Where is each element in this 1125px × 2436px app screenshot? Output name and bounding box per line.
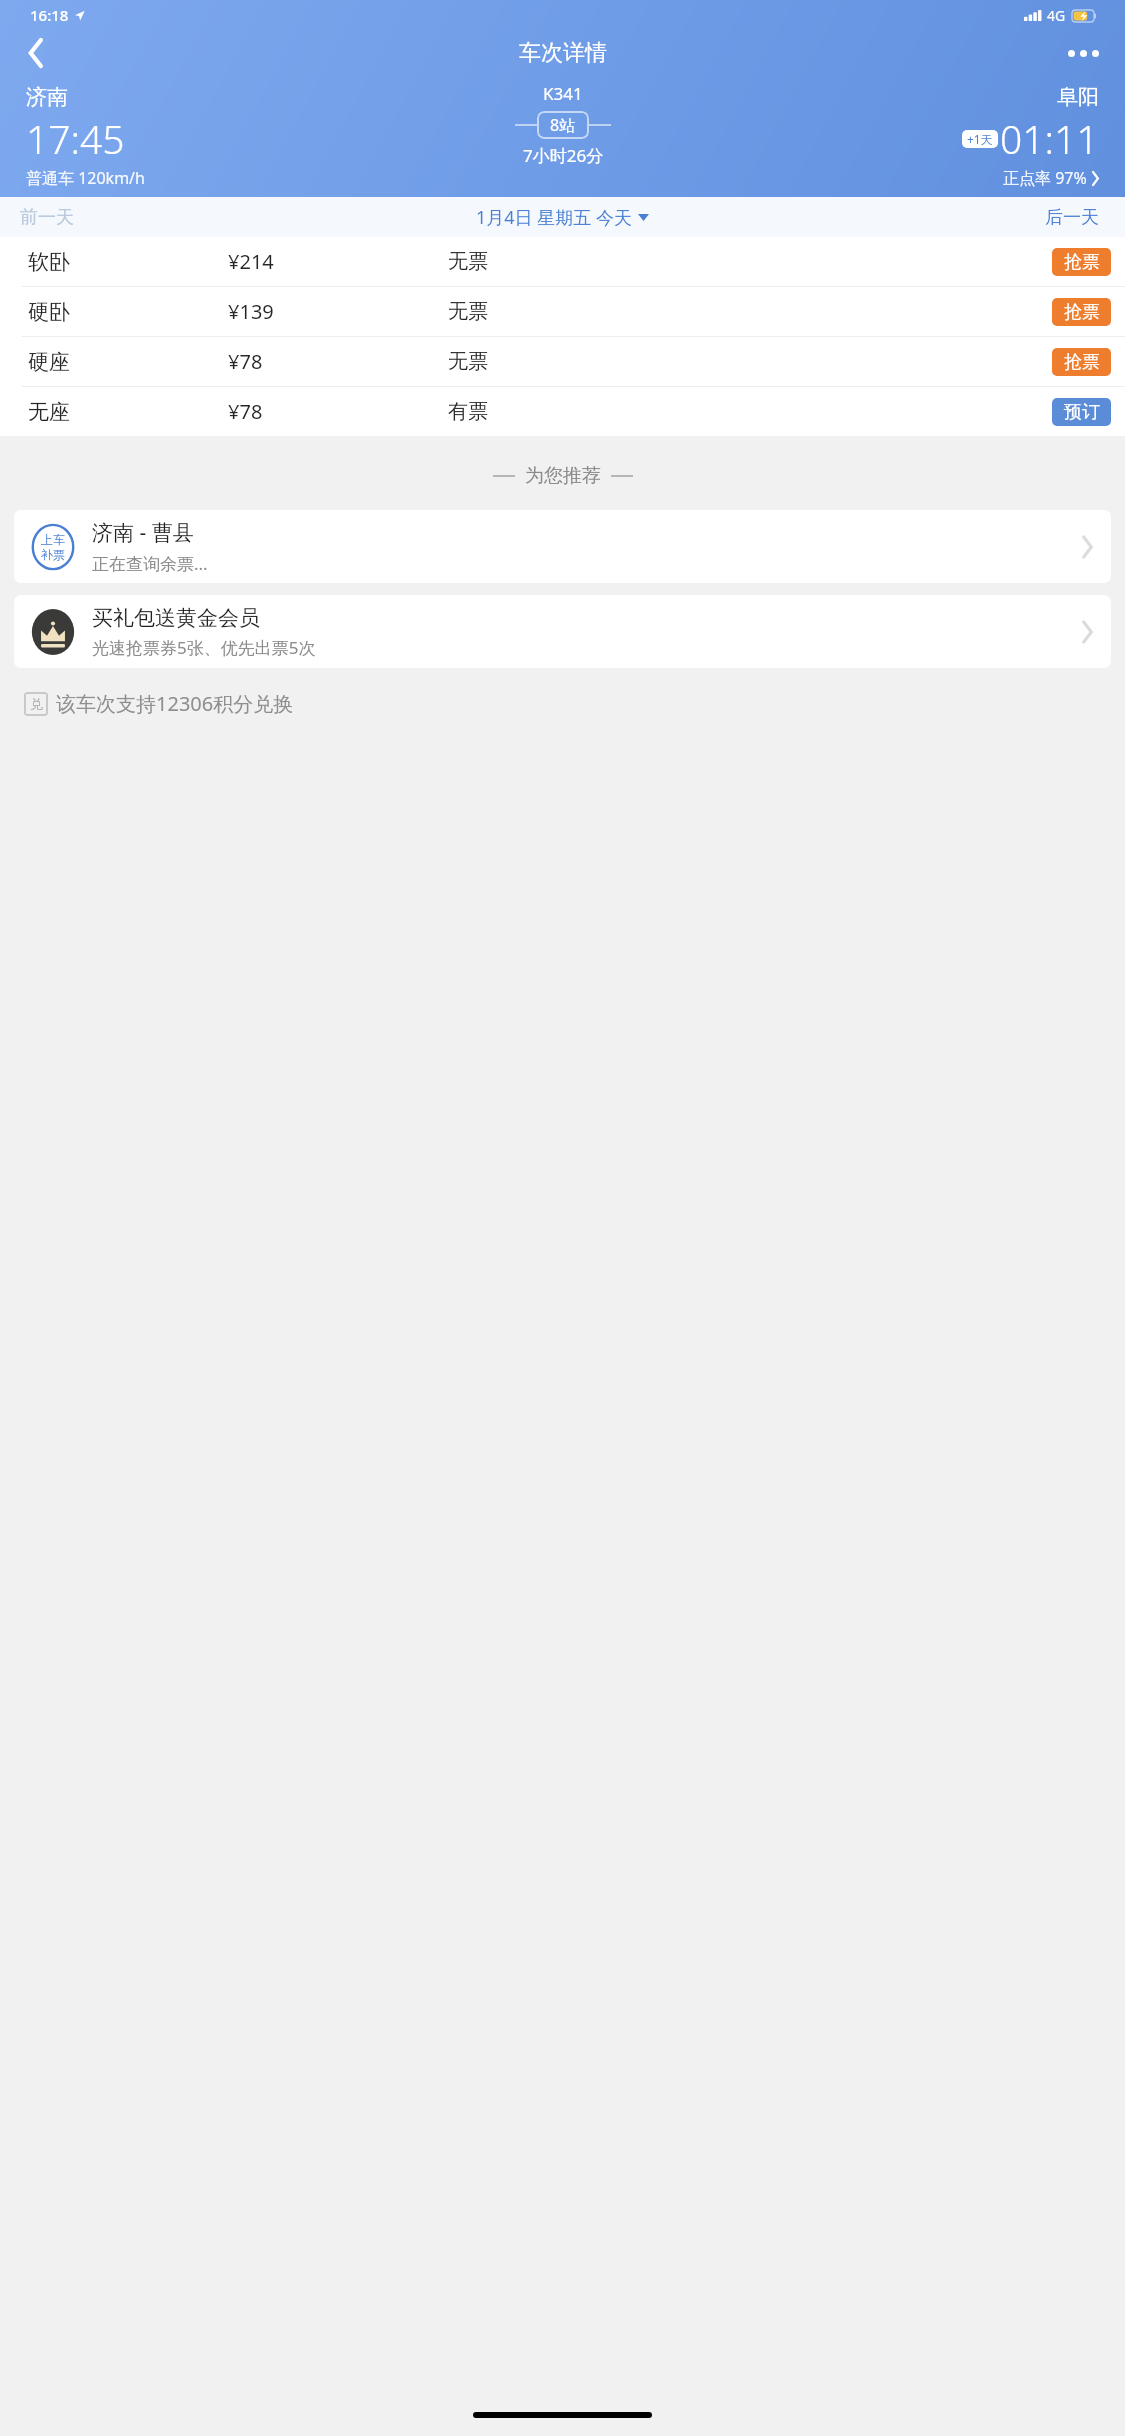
staticText: 硬卧 xyxy=(28,299,70,325)
button[interactable]: 后一天 xyxy=(1045,197,1099,237)
button[interactable]: 买礼包送黄金会员 xyxy=(14,595,1111,668)
staticText: 17:45 xyxy=(26,112,125,165)
button[interactable]: 抢票 xyxy=(1052,298,1111,326)
staticText: 4G xyxy=(1047,6,1066,25)
staticText: 无票 xyxy=(448,249,488,274)
button[interactable]: 无座 xyxy=(0,387,1125,436)
button[interactable]: 抢票 xyxy=(1052,248,1111,276)
staticText: 济南 xyxy=(26,84,68,110)
staticText: 后一天 xyxy=(1045,206,1099,229)
staticText: 济南 - 曹县 xyxy=(92,518,194,547)
button[interactable]: More options xyxy=(1059,30,1107,76)
button[interactable]: 前一天 xyxy=(20,197,74,237)
staticText: +1天 xyxy=(967,131,993,147)
staticText: 无票 xyxy=(448,299,488,324)
staticText: 预订 xyxy=(1064,401,1100,424)
staticText: 16:18 xyxy=(30,5,69,25)
staticText: 上车 xyxy=(41,532,65,547)
button[interactable]: 上车 xyxy=(14,510,1111,583)
staticText: 软卧 xyxy=(28,249,70,275)
staticText: 抢票 xyxy=(1064,351,1100,374)
staticText: 硬座 xyxy=(28,349,70,375)
button[interactable]: 预订 xyxy=(1052,398,1111,426)
staticText: 7小时26分 xyxy=(523,144,604,167)
staticText: 正点率 97% xyxy=(1003,167,1087,189)
staticText: 补票 xyxy=(41,547,65,562)
button[interactable]: 1月4日 星期五 今天 xyxy=(476,205,649,230)
button[interactable]: 硬座 xyxy=(0,337,1125,386)
button[interactable]: 硬卧 xyxy=(0,287,1125,336)
button[interactable]: 抢票 xyxy=(1052,348,1111,376)
button[interactable]: 8站 xyxy=(550,114,576,136)
staticText: 买礼包送黄金会员 xyxy=(92,605,260,631)
staticText: 无座 xyxy=(28,399,70,425)
staticText: ¥78 xyxy=(228,398,263,425)
staticText: 该车次支持12306积分兑换 xyxy=(56,690,294,717)
staticText: ¥78 xyxy=(228,348,263,375)
staticText: 01:11 xyxy=(1000,112,1099,165)
staticText: 1月4日 星期五 今天 xyxy=(476,205,632,230)
staticText: K341 xyxy=(543,82,583,105)
staticText: ¥214 xyxy=(228,248,274,275)
staticText: 为您推荐 xyxy=(525,464,601,488)
button[interactable]: 正点率 97% xyxy=(1003,167,1099,189)
staticText: 车次详情 xyxy=(519,39,607,67)
staticText: 有票 xyxy=(448,399,488,424)
staticText: 正在查询余票... xyxy=(92,552,208,575)
staticText: 无票 xyxy=(448,349,488,374)
staticText: ¥139 xyxy=(228,298,274,325)
staticText: 抢票 xyxy=(1064,251,1100,274)
button[interactable]: Back xyxy=(12,30,60,76)
staticText: 8站 xyxy=(550,114,576,136)
staticText: 阜阳 xyxy=(1057,84,1099,110)
staticText: 前一天 xyxy=(20,206,74,229)
staticText: 普通车 120km/h xyxy=(26,167,145,189)
staticText: 抢票 xyxy=(1064,301,1100,324)
button[interactable]: 软卧 xyxy=(0,237,1125,286)
staticText: 光速抢票券5张、优先出票5次 xyxy=(92,636,316,659)
staticText: 兑 xyxy=(30,696,43,712)
